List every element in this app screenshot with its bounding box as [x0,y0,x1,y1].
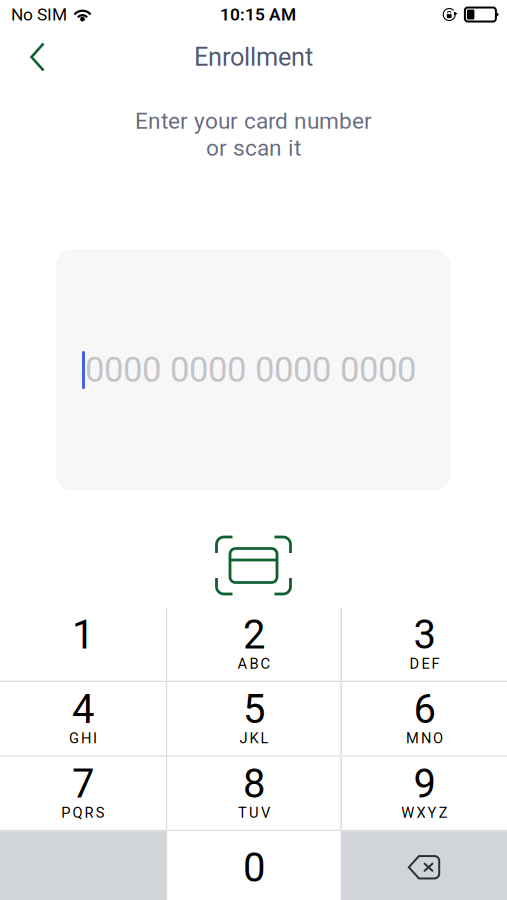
button[interactable]: 4 [0,682,166,755]
staticText: TUV [238,804,270,821]
staticText: 0000 0000 0000 0000 [85,350,416,390]
button[interactable]: 6 [342,682,507,755]
staticText: DEF [409,655,440,672]
button[interactable]: 5 [167,682,340,755]
staticText: Enrollment [194,42,313,72]
staticText: 10:15 AM [220,4,296,25]
button[interactable]: Back [0,31,64,83]
button[interactable]: Card number [56,249,451,491]
button[interactable]: 7 [0,757,166,830]
staticText: 1 [72,611,94,658]
button[interactable]: Delete [342,831,507,900]
staticText: No SIM [11,4,67,25]
staticText: PQRS [61,804,105,821]
staticText: or scan it [206,135,301,161]
button[interactable]: 8 [167,757,340,830]
staticText: 9 [413,760,435,807]
button[interactable]: Scan card [208,529,298,602]
staticText: ABC [237,655,271,672]
button[interactable]: 3 [342,608,507,681]
staticText: 8 [243,760,265,807]
staticText: GHI [69,730,97,747]
staticText: 2 [243,611,265,658]
staticText: WXYZ [401,804,448,821]
staticText: Enter your card number [135,108,372,134]
staticText: 5 [243,686,265,733]
button[interactable]: 2 [167,608,340,681]
staticText: 3 [413,611,435,658]
staticText: JKL [239,730,269,747]
button[interactable]: 0 [167,831,340,900]
staticText: 6 [413,686,435,733]
button[interactable]: 1 [0,608,166,681]
staticText: 4 [72,686,94,733]
staticText: MNO [406,730,443,747]
staticText: 7 [72,760,94,807]
button[interactable]: 9 [342,757,507,830]
staticText: 0 [243,844,265,891]
